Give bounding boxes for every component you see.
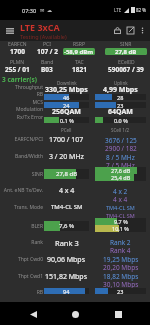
staticText: 18,82 Mbps [103, 272, 139, 281]
staticText: TM4-CL SM [51, 203, 83, 211]
staticText: BLER [31, 223, 43, 229]
staticText: 07:30 [22, 7, 37, 14]
staticText: Rank 3 [55, 238, 79, 248]
staticText: 4 x 4 [113, 195, 128, 204]
staticText: 90,06 Mbps [47, 255, 86, 265]
staticText: RB [36, 91, 43, 97]
staticText: SINR [120, 41, 132, 48]
staticText: 30,10 Mbps [103, 280, 139, 289]
staticText: 23 [117, 102, 124, 108]
staticText: 9,7 % [114, 218, 128, 225]
staticText: ✉ [40, 7, 45, 13]
staticText: 25,4 dB [111, 174, 131, 181]
staticText: 19,25 Mbps [103, 255, 139, 264]
staticText: 27,6 dB [111, 167, 131, 174]
staticText: TM4-CL SM [106, 212, 135, 219]
staticText: Uplink [114, 80, 128, 86]
staticText: 7 / 5 MHz [106, 161, 135, 170]
staticText: EARFCN [8, 41, 27, 48]
staticText: 10,1 % [112, 225, 129, 232]
button[interactable]: Share [124, 24, 137, 37]
staticText: Rank 2 [110, 238, 131, 247]
staticText: 2900 / 182 [105, 144, 137, 153]
staticText: Testing (Available) [20, 33, 67, 40]
staticText: 64QAM [108, 107, 133, 117]
staticText: 4 x 2 [113, 187, 128, 196]
staticText: 330,25 Mbps [45, 85, 88, 95]
staticText: Rx/Tx Error [16, 114, 43, 120]
staticText: 255 / 01 [5, 65, 30, 74]
button[interactable]: Recent apps [108, 304, 128, 324]
staticText: 4 x 4 [59, 186, 75, 196]
staticText: 23 [117, 288, 124, 294]
staticText: 0,1 % [60, 117, 74, 123]
staticText: Ant. eNB Tx/Dev. Rx [0, 187, 43, 193]
staticText: 20,20 Mbps [103, 263, 139, 272]
staticText: SCell 1/2 [111, 127, 130, 133]
staticText: RB [36, 289, 43, 295]
button[interactable]: Lock [111, 24, 124, 37]
staticText: 590067 / 39 [108, 65, 144, 74]
staticText: Thpt Cwd0 [17, 256, 43, 262]
staticText: 1700 [10, 47, 25, 56]
button[interactable]: Home [65, 304, 85, 324]
staticText: 46 [63, 94, 70, 100]
staticText: PCI [43, 41, 51, 48]
staticText: Rank 4 [110, 246, 131, 255]
button[interactable]: More options [137, 25, 148, 36]
staticText: 4,99 Mbps [103, 85, 138, 95]
staticText: RSRP [73, 41, 85, 48]
staticText: 3 carrier(s) [2, 75, 37, 84]
button[interactable]: Back [23, 304, 43, 324]
staticText: TAC [75, 59, 84, 66]
staticText: 24 [63, 102, 70, 108]
staticText: SINR [31, 171, 43, 177]
staticText: -58,9 dBm [64, 48, 94, 55]
staticText: PCell [61, 127, 72, 133]
staticText: 1821 [72, 65, 87, 74]
staticText: MCS [32, 99, 43, 105]
staticText: 0,0 % [114, 117, 128, 123]
staticText: 3 / 20 MHz [49, 152, 84, 162]
staticText: 3676 / 125 [105, 136, 137, 145]
staticText: ☁ [47, 7, 52, 13]
staticText: Rank [31, 239, 43, 245]
staticText: 27,8 dB [56, 170, 78, 178]
staticText: 107 / 2 [37, 47, 58, 56]
staticText: Thpt Cwd1 [17, 273, 43, 279]
staticText: 8 / 5 MHz [106, 153, 135, 162]
staticText: LTE 3xCA [20, 21, 60, 33]
staticText: 151,82 Mbps [45, 272, 88, 282]
staticText: B03 [41, 65, 53, 74]
staticText: EARFCN/PCI [14, 136, 43, 142]
staticText: Downlink [57, 80, 77, 86]
staticText: 7,6 % [59, 222, 75, 230]
staticText: ECellID [118, 59, 135, 66]
button[interactable]: Menu [3, 24, 17, 38]
staticText: 94 [63, 288, 70, 294]
staticText: 1700 / 107 [49, 135, 84, 145]
staticText: Trans. Mode [14, 204, 43, 210]
staticText: Throughput [14, 84, 43, 90]
staticText: Band [41, 59, 54, 66]
staticText: 82 % [136, 7, 147, 13]
staticText: Modulation [15, 106, 43, 112]
staticText: TM4-CL SM [106, 204, 135, 211]
staticText: Band/Width [15, 153, 43, 159]
staticText: 27,8 dB [115, 48, 137, 55]
staticText: 28 [117, 94, 124, 100]
staticText: PLMN [10, 59, 24, 66]
staticText: LTE [114, 7, 122, 13]
staticText: 256QAM [52, 107, 81, 117]
